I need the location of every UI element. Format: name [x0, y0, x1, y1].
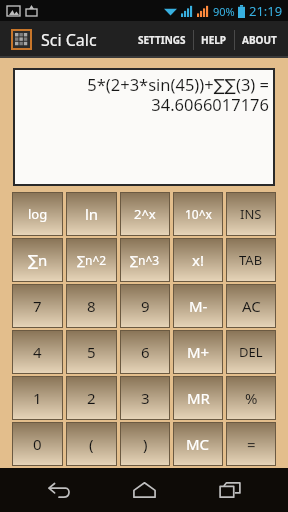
staticText: 5*(2+3*sin(45))+∑∑(3) = 34.6066017176 [21, 73, 269, 116]
button[interactable]: ∑n [13, 239, 62, 281]
staticText: 4 [33, 342, 42, 362]
staticText: 1 [33, 388, 42, 408]
button[interactable]: 7 [13, 285, 62, 327]
button[interactable]: 6 [121, 331, 169, 373]
staticText: % [245, 388, 258, 408]
button[interactable]: log [13, 193, 62, 235]
staticText: 9 [141, 296, 150, 316]
button[interactable]: INS [227, 193, 275, 235]
staticText: M+ [187, 342, 210, 362]
button[interactable]: 4 [13, 331, 62, 373]
staticText: DEL [239, 343, 263, 361]
staticText: 10^x [185, 206, 212, 222]
staticText: 7 [33, 296, 42, 316]
button[interactable]: ∑n^2 [67, 239, 116, 281]
button[interactable]: 0 [13, 423, 62, 465]
button[interactable]: 9 [121, 285, 169, 327]
staticText: HELP [201, 33, 227, 47]
button[interactable]: 2 [67, 377, 116, 419]
staticText: MC [186, 434, 210, 454]
staticText: ∑n [28, 250, 48, 270]
button[interactable]: ABOUT [235, 21, 284, 58]
button[interactable]: DEL [227, 331, 275, 373]
button[interactable]: 2^x [121, 193, 169, 235]
button[interactable]: ( [67, 423, 116, 465]
button[interactable]: TAB [227, 239, 275, 281]
button[interactable]: ) [121, 423, 169, 465]
button[interactable]: MC [174, 423, 222, 465]
staticText: 5 [87, 342, 96, 362]
staticText: log [28, 205, 48, 223]
staticText: INS [240, 205, 262, 223]
button[interactable]: 8 [67, 285, 116, 327]
staticText: 2 [87, 388, 96, 408]
button[interactable]: AC [227, 285, 275, 327]
button[interactable]: Sci Calc app icon [13, 31, 30, 48]
staticText: M- [189, 296, 208, 316]
button[interactable]: Home [117, 470, 171, 510]
staticText: x! [192, 250, 204, 270]
staticText: ) [143, 434, 148, 454]
button[interactable]: M- [174, 285, 222, 327]
staticText: ( [89, 434, 94, 454]
button[interactable]: SETTINGS [131, 21, 193, 58]
staticText: 3 [141, 388, 150, 408]
staticText: Sci Calc [41, 29, 97, 51]
button[interactable]: ln [67, 193, 116, 235]
button[interactable]: % [227, 377, 275, 419]
button[interactable]: 1 [13, 377, 62, 419]
button[interactable]: 5*(2+3*sin(45))+∑∑(3) = 34.6066017176 [15, 70, 273, 184]
staticText: = [247, 434, 256, 454]
staticText: 0 [33, 434, 42, 454]
staticText: 90% [213, 4, 235, 19]
button[interactable]: Back [32, 470, 86, 510]
staticText: SETTINGS [138, 33, 186, 47]
button[interactable]: MR [174, 377, 222, 419]
staticText: 6 [141, 342, 150, 362]
staticText: MR [187, 388, 210, 408]
button[interactable]: HELP [194, 21, 234, 58]
button[interactable]: ∑n^3 [121, 239, 169, 281]
staticText: ∑n^2 [77, 252, 107, 268]
button[interactable]: = [227, 423, 275, 465]
button[interactable]: M+ [174, 331, 222, 373]
staticText: 21:19 [249, 2, 283, 20]
staticText: TAB [239, 251, 263, 269]
staticText: ln [85, 204, 99, 224]
button[interactable]: 10^x [174, 193, 222, 235]
staticText: ABOUT [242, 33, 277, 47]
staticText: 8 [87, 296, 96, 316]
button[interactable]: x! [174, 239, 222, 281]
button[interactable]: Recent apps [203, 470, 257, 510]
staticText: ∑n^3 [130, 252, 160, 268]
staticText: 2^x [134, 205, 156, 223]
staticText: AC [242, 296, 261, 316]
button[interactable]: 5 [67, 331, 116, 373]
button[interactable]: 3 [121, 377, 169, 419]
